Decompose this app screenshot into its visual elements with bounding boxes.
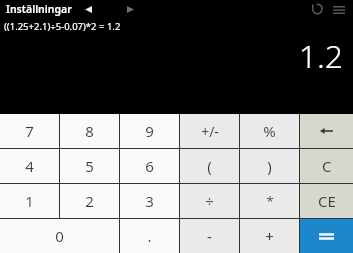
button[interactable]: 1 xyxy=(0,184,59,218)
staticText: CE xyxy=(318,191,336,211)
button[interactable]: 7 xyxy=(0,114,59,148)
staticText: % xyxy=(263,121,276,141)
staticText: 1.2 xyxy=(298,34,343,78)
button[interactable]: Menu xyxy=(330,0,348,18)
button[interactable]: 8 xyxy=(60,114,119,148)
staticText: ( xyxy=(207,156,212,176)
button[interactable]: ÷ xyxy=(180,184,239,218)
button[interactable]: * xyxy=(240,184,299,218)
button[interactable]: ((1.25+2.1)÷5-0.07)*2 = 1.2 xyxy=(4,20,121,33)
button[interactable]: 2 xyxy=(60,184,119,218)
staticText: 8 xyxy=(85,121,94,141)
button[interactable]: . xyxy=(120,219,179,253)
staticText: 5 xyxy=(85,156,94,176)
button[interactable]: C xyxy=(300,149,353,183)
button[interactable]: 6 xyxy=(120,149,179,183)
button[interactable]: +/- xyxy=(180,114,239,148)
staticText: ÷ xyxy=(205,191,214,211)
staticText: . xyxy=(147,226,152,246)
staticText: C xyxy=(322,156,332,176)
staticText: 0 xyxy=(55,226,64,246)
staticText: + xyxy=(265,226,274,246)
staticText: - xyxy=(207,226,212,246)
button[interactable]: 5 xyxy=(60,149,119,183)
button[interactable]: 3 xyxy=(120,184,179,218)
button[interactable]: 0 xyxy=(0,219,119,253)
staticText: 1 xyxy=(25,191,34,211)
button[interactable]: - xyxy=(180,219,239,253)
staticText: 3 xyxy=(145,191,154,211)
staticText: ) xyxy=(267,156,272,176)
staticText: 4 xyxy=(25,156,34,176)
staticText: Inställningar xyxy=(6,2,72,16)
button[interactable]: Equals xyxy=(300,219,353,253)
button[interactable]: Inställningar xyxy=(6,2,72,16)
button[interactable]: ( xyxy=(180,149,239,183)
staticText: 7 xyxy=(25,121,34,141)
staticText: 6 xyxy=(145,156,154,176)
staticText: +/- xyxy=(201,122,219,141)
button[interactable]: CE xyxy=(300,184,353,218)
button[interactable]: % xyxy=(240,114,299,148)
button[interactable]: 4 xyxy=(0,149,59,183)
button[interactable]: 9 xyxy=(120,114,179,148)
staticText: * xyxy=(266,192,274,210)
staticText: 9 xyxy=(145,121,154,141)
button[interactable]: + xyxy=(240,219,299,253)
staticText: 2 xyxy=(85,191,94,211)
button[interactable]: ) xyxy=(240,149,299,183)
button[interactable]: Backspace xyxy=(300,114,353,148)
button[interactable]: Next xyxy=(122,1,138,17)
button[interactable]: Undo xyxy=(307,0,325,18)
button[interactable]: Previous xyxy=(80,1,96,17)
staticText: ((1.25+2.1)÷5-0.07)*2 = 1.2 xyxy=(4,20,121,33)
